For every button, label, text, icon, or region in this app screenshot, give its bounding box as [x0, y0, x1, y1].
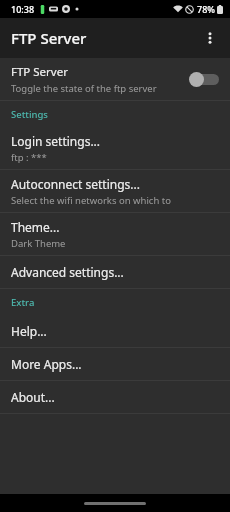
- button[interactable]: FTP Server: [0, 58, 230, 100]
- button[interactable]: Autoconnect settings...: [0, 170, 230, 212]
- button[interactable]: More options: [194, 22, 226, 54]
- staticText: Autoconnect settings...: [11, 176, 140, 192]
- button[interactable]: About...: [0, 381, 230, 413]
- button[interactable]: Help...: [0, 315, 230, 347]
- button[interactable]: Theme...: [0, 213, 230, 255]
- staticText: Settings: [11, 108, 48, 121]
- staticText: Extra: [11, 296, 35, 309]
- staticText: More Apps...: [11, 356, 82, 372]
- staticText: About...: [11, 389, 55, 405]
- staticText: FTP Server: [11, 28, 87, 48]
- staticText: Select the wifi networks on which to aut…: [11, 194, 219, 207]
- staticText: Theme...: [11, 219, 60, 235]
- staticText: FTP Server: [11, 64, 68, 80]
- button[interactable]: Advanced settings...: [0, 256, 230, 288]
- staticText: 10:38: [11, 3, 35, 15]
- staticText: Login settings...: [11, 133, 101, 149]
- staticText: Toggle the state of the ftp server: [11, 82, 157, 95]
- staticText: Help...: [11, 323, 47, 339]
- button[interactable]: More Apps...: [0, 348, 230, 380]
- staticText: Dark Theme: [11, 237, 66, 250]
- staticText: Advanced settings...: [11, 264, 124, 280]
- staticText: 78%: [197, 3, 215, 15]
- button[interactable]: Login settings...: [0, 127, 230, 169]
- staticText: ftp : ***: [11, 151, 47, 164]
